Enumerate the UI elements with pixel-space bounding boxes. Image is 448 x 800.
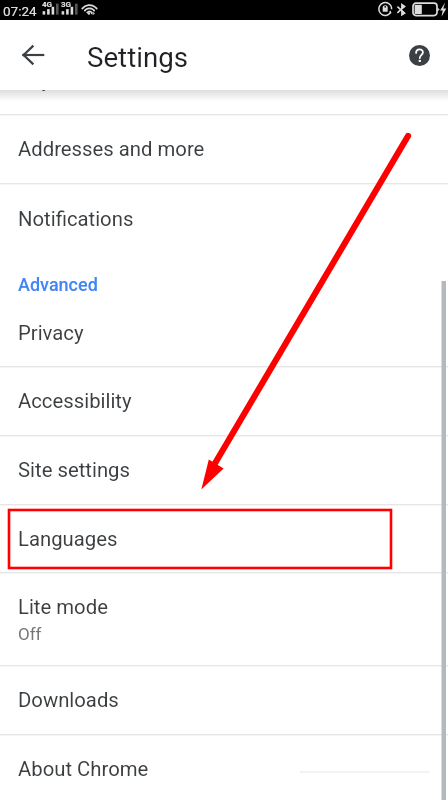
- staticText: Settings: [87, 41, 189, 73]
- staticText: Privacy: [18, 321, 84, 345]
- staticText: Downloads: [18, 688, 119, 712]
- staticText: Off: [18, 624, 42, 644]
- button[interactable]: Accessibility: [0, 367, 448, 435]
- button[interactable]: Downloads: [0, 666, 448, 734]
- staticText: Addresses and more: [18, 137, 205, 161]
- button[interactable]: Notifications: [0, 184, 448, 253]
- staticText: Notifications: [18, 207, 134, 231]
- staticText: Accessibility: [18, 389, 132, 413]
- staticText: 07:24: [3, 3, 37, 19]
- staticText: About Chrome: [18, 757, 149, 781]
- staticText: 4G: [42, 0, 53, 9]
- button[interactable]: Lite mode: [0, 573, 448, 665]
- staticText: Lite mode: [18, 595, 108, 619]
- staticText: Payment methods: [18, 68, 183, 92]
- button[interactable]: Languages: [0, 505, 448, 572]
- button[interactable]: Navigate up: [9, 31, 57, 79]
- staticText: 3G: [61, 0, 72, 9]
- button[interactable]: Site settings: [0, 436, 448, 504]
- button[interactable]: About Chrome: [0, 735, 448, 800]
- button[interactable]: Addresses and more: [0, 115, 448, 183]
- button[interactable]: Help and feedback: [395, 31, 443, 79]
- button[interactable]: Payment methods: [0, 45, 448, 114]
- staticText: Advanced: [18, 274, 98, 295]
- button[interactable]: Privacy: [0, 300, 448, 366]
- staticText: Site settings: [18, 458, 130, 482]
- staticText: Languages: [18, 527, 118, 551]
